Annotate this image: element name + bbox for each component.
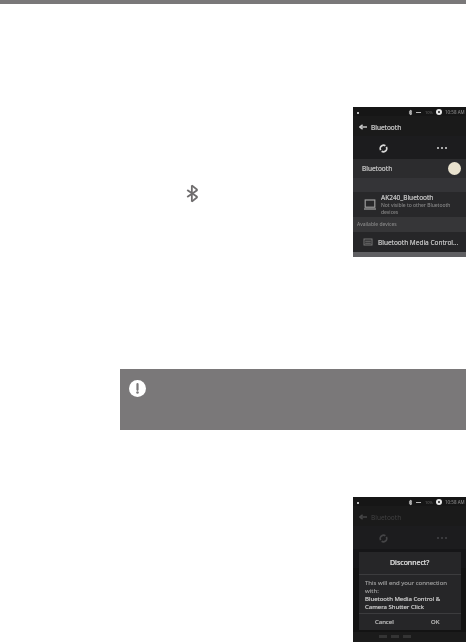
staticText: 10%	[425, 110, 433, 115]
button[interactable]: OK	[410, 614, 461, 630]
other: Back	[359, 514, 367, 520]
staticText: Bluetooth	[371, 123, 402, 132]
button[interactable]: Back	[353, 116, 466, 136]
staticText: Not visible to other Bluetooth	[381, 202, 451, 209]
staticText: OK	[431, 618, 440, 626]
staticText: Cancel	[375, 618, 394, 626]
button[interactable]: Scan for devices	[376, 531, 390, 545]
button[interactable]: AK240_Bluetooth	[353, 192, 466, 217]
staticText: devices	[381, 209, 399, 216]
button[interactable]: Bluetooth Media Control...	[353, 232, 466, 252]
staticText: Bluetooth	[371, 513, 402, 522]
staticText: 10%	[425, 500, 433, 505]
staticText: Bluetooth Media Control...	[378, 238, 459, 247]
staticText: 10:58 AM	[445, 109, 465, 115]
button[interactable]: More options	[434, 531, 450, 545]
staticText: Bluetooth	[362, 164, 393, 173]
button[interactable]: Scan for devices	[376, 141, 390, 155]
other: Back	[359, 124, 367, 130]
staticText: with:	[365, 587, 379, 595]
staticText: Disconnect?	[390, 558, 430, 568]
staticText: Camera Shutter Click	[365, 603, 424, 611]
button[interactable]: More options	[434, 141, 450, 155]
staticText: Bluetooth Media Control &	[365, 595, 441, 603]
staticText: 10:58 AM	[445, 499, 465, 505]
button[interactable]: Bluetooth	[353, 159, 466, 178]
staticText: AK240_Bluetooth	[381, 193, 434, 202]
button[interactable]: Cancel	[359, 614, 410, 630]
button[interactable]: Back	[353, 506, 466, 526]
staticText: This will end your connection	[365, 579, 447, 587]
staticText: Available devices	[357, 221, 397, 228]
